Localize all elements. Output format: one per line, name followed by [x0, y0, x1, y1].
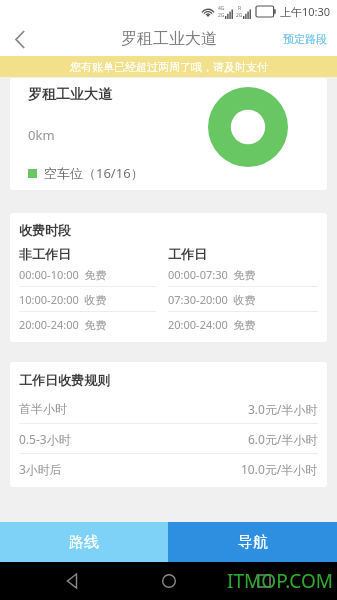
staticText: 4G: [218, 5, 225, 12]
staticText: 路线: [69, 533, 99, 552]
staticText: 10.0元/半小时: [241, 461, 318, 477]
staticText: 罗租工业大道: [28, 86, 112, 104]
staticText: 00:00-07:30 免费: [168, 267, 318, 282]
staticText: ITMOP.COM: [227, 568, 333, 594]
staticText: 预定路段: [283, 32, 327, 46]
staticText: 20:00-24:00 免费: [168, 317, 318, 332]
button[interactable]: Home: [147, 562, 191, 600]
staticText: R: [238, 5, 242, 12]
button[interactable]: Back: [51, 562, 95, 600]
staticText: 导航: [238, 533, 268, 552]
staticText: 空车位（16/16）: [44, 164, 144, 182]
button[interactable]: Recents: [242, 562, 286, 600]
staticText: 收费时段: [19, 222, 71, 238]
staticText: 0.5-3小时: [19, 431, 71, 447]
staticText: 您有账单已经超过两周了哦，请及时支付: [70, 60, 268, 74]
staticText: 6.0元/半小时: [248, 431, 318, 447]
staticText: 0km: [28, 126, 55, 144]
staticText: 3小时后: [19, 461, 62, 477]
staticText: 2G: [236, 12, 243, 19]
button[interactable]: 导航: [168, 522, 337, 562]
staticText: 工作日收费规则: [19, 372, 110, 388]
staticText: 罗租工业大道: [121, 29, 217, 49]
button[interactable]: Back: [0, 22, 40, 56]
staticText: 工作日: [168, 246, 318, 262]
staticText: 00:00-10:00 免费: [19, 267, 168, 282]
button[interactable]: 路线: [0, 522, 168, 562]
staticText: 20:00-24:00 免费: [19, 317, 168, 332]
staticText: 非工作日: [19, 246, 168, 262]
staticText: 首半小时: [19, 401, 67, 416]
staticText: 3.0元/半小时: [248, 401, 318, 417]
staticText: 上午10:30: [280, 4, 331, 19]
staticText: 07:30-20:00 收费: [168, 292, 318, 307]
button[interactable]: 预定路段: [279, 26, 331, 52]
staticText: 10:00-20:00 收费: [19, 292, 168, 307]
staticText: 2G: [218, 12, 225, 19]
